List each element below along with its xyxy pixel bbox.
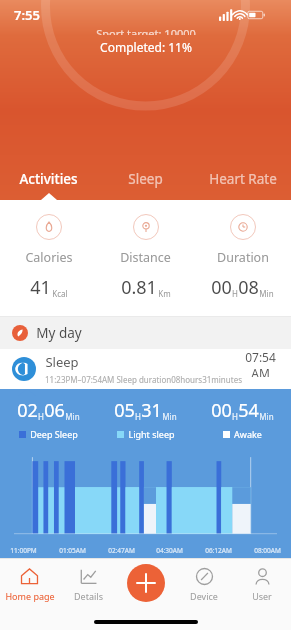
staticText: 11:23PM–07:54AM Sleep duration08hours31m… (45, 374, 242, 385)
staticText: Details (74, 590, 103, 602)
staticText: Min (162, 411, 177, 422)
button[interactable]: Heart Rate (194, 158, 291, 200)
staticText: 06:12AM (205, 546, 232, 555)
staticText: H (232, 411, 238, 422)
staticText: 04:30AM (156, 546, 183, 555)
button[interactable]: Activities (0, 158, 97, 200)
button[interactable]: Home page (0, 558, 59, 610)
staticText: 02 (17, 398, 38, 423)
button[interactable]: Details (59, 558, 117, 610)
staticText: Activities (19, 170, 78, 188)
staticText: 01:05AM (59, 546, 86, 555)
staticText: 07:54AM (242, 349, 279, 377)
staticText: 11:00PM (10, 546, 37, 555)
staticText: 00 (211, 275, 232, 300)
staticText: Sleep (45, 353, 79, 371)
staticText: Deep Sleep (30, 428, 78, 440)
staticText: 7:55 (14, 6, 40, 24)
button[interactable]: Distance (97, 214, 194, 300)
staticText: Calories (25, 249, 73, 266)
staticText: H (38, 411, 44, 422)
staticText: H (232, 288, 238, 299)
staticText: Km (158, 288, 171, 299)
staticText: User (252, 590, 272, 602)
button[interactable]: User (233, 558, 291, 610)
staticText: 05 (114, 398, 135, 423)
staticText: Kcal (52, 288, 68, 299)
staticText: 0.81 (121, 275, 157, 300)
staticText: Home page (5, 590, 55, 602)
button[interactable]: Duration (194, 214, 291, 300)
staticText: Awake (234, 428, 262, 440)
staticText: 00 (211, 398, 232, 423)
staticText: 54 (238, 398, 259, 423)
button[interactable]: Sleep (0, 349, 291, 389)
staticText: 06 (44, 398, 65, 423)
button[interactable]: Add (127, 564, 165, 602)
staticText: 08 (238, 275, 259, 300)
staticText: Distance (120, 249, 171, 266)
staticText: Light sleep (128, 428, 175, 440)
staticText: Sport target: 10000 (96, 26, 196, 35)
staticText: Min (259, 288, 274, 299)
staticText: Min (259, 411, 274, 422)
staticText: 08:00AM (254, 546, 281, 555)
staticText: 31 (141, 398, 162, 423)
staticText: Duration (217, 249, 269, 266)
staticText: My day (36, 324, 82, 342)
staticText: Sleep (128, 170, 163, 188)
button[interactable]: Device (175, 558, 233, 610)
staticText: Min (65, 411, 80, 422)
staticText: H (135, 411, 141, 422)
button[interactable]: Sleep (97, 158, 194, 200)
staticText: Device (190, 590, 218, 602)
button[interactable]: Calories (0, 214, 97, 300)
staticText: Heart Rate (209, 170, 277, 188)
staticText: 41 (30, 275, 51, 300)
staticText: 02:47AM (108, 546, 135, 555)
staticText: Completed: 11% (100, 39, 192, 55)
